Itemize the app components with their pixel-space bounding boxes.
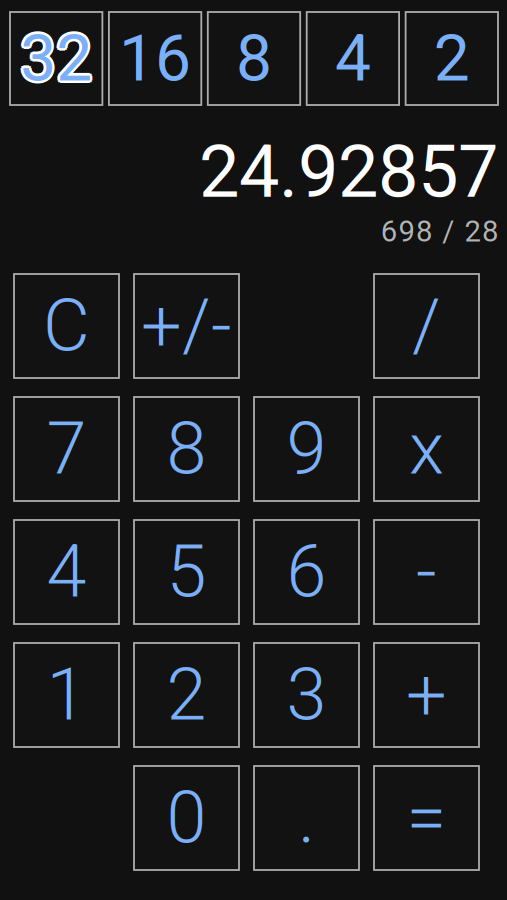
staticText: 7 bbox=[46, 407, 86, 491]
staticText: 9 bbox=[286, 407, 326, 491]
staticText: 16 bbox=[119, 21, 191, 96]
button[interactable]: 2 bbox=[134, 643, 239, 747]
staticText: 32 bbox=[21, 22, 93, 97]
button[interactable]: 5 bbox=[134, 520, 239, 624]
staticText: 32 bbox=[20, 22, 92, 97]
staticText: . bbox=[298, 776, 315, 860]
button[interactable]: + bbox=[374, 643, 479, 747]
staticText: 32 bbox=[18, 23, 90, 98]
button[interactable]: 32 bbox=[10, 12, 102, 105]
staticText: - bbox=[416, 530, 437, 614]
button[interactable]: +/- bbox=[134, 274, 239, 378]
staticText: 32 bbox=[19, 21, 91, 96]
button[interactable]: 3 bbox=[254, 643, 359, 747]
staticText: 4 bbox=[335, 21, 371, 96]
staticText: 1 bbox=[46, 653, 86, 737]
staticText: 698 / 28 bbox=[381, 214, 498, 249]
staticText: C bbox=[43, 284, 90, 368]
button[interactable]: 8 bbox=[134, 397, 239, 501]
staticText: 8 bbox=[166, 407, 206, 491]
button[interactable]: 2 bbox=[406, 12, 498, 105]
button[interactable]: / bbox=[374, 274, 479, 378]
button[interactable]: = bbox=[374, 766, 479, 870]
staticText: 24.92857 bbox=[199, 130, 498, 214]
button[interactable]: C bbox=[14, 274, 119, 378]
button[interactable]: 6 bbox=[254, 520, 359, 624]
button[interactable]: x bbox=[374, 397, 479, 501]
staticText: 32 bbox=[22, 19, 94, 94]
staticText: 0 bbox=[166, 776, 206, 860]
button[interactable]: 0 bbox=[134, 766, 239, 870]
button[interactable]: 7 bbox=[14, 397, 119, 501]
staticText: 32 bbox=[21, 21, 93, 96]
staticText: 32 bbox=[20, 21, 92, 96]
staticText: 4 bbox=[46, 530, 86, 614]
staticText: 32 bbox=[20, 24, 92, 99]
staticText: 32 bbox=[18, 21, 90, 96]
staticText: +/- bbox=[141, 284, 232, 368]
staticText: 6 bbox=[286, 530, 326, 614]
staticText: x bbox=[409, 407, 444, 491]
button[interactable]: 8 bbox=[208, 12, 300, 105]
button[interactable]: . bbox=[254, 766, 359, 870]
staticText: 32 bbox=[22, 23, 94, 98]
staticText: 32 bbox=[20, 20, 92, 95]
staticText: 8 bbox=[236, 21, 272, 96]
staticText: 2 bbox=[166, 653, 206, 737]
staticText: 2 bbox=[434, 21, 470, 96]
button[interactable]: 4 bbox=[14, 520, 119, 624]
button[interactable]: 1 bbox=[14, 643, 119, 747]
staticText: 32 bbox=[19, 20, 91, 95]
staticText: 32 bbox=[23, 21, 95, 96]
staticText: 32 bbox=[21, 20, 93, 95]
button[interactable]: 9 bbox=[254, 397, 359, 501]
staticText: = bbox=[406, 776, 446, 860]
button[interactable]: - bbox=[374, 520, 479, 624]
button[interactable]: 16 bbox=[109, 12, 201, 105]
staticText: / bbox=[412, 284, 441, 368]
staticText: 32 bbox=[18, 19, 90, 94]
staticText: + bbox=[406, 653, 447, 737]
button[interactable]: 4 bbox=[307, 12, 399, 105]
staticText: 32 bbox=[20, 18, 92, 93]
staticText: 3 bbox=[286, 653, 326, 737]
staticText: 5 bbox=[166, 530, 206, 614]
staticText: 32 bbox=[19, 22, 91, 97]
